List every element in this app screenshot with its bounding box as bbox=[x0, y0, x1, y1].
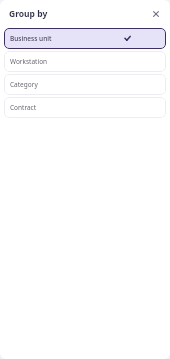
button[interactable]: Business unit bbox=[4, 28, 166, 49]
staticText: Business unit bbox=[10, 34, 52, 43]
button[interactable]: Workstation bbox=[4, 51, 166, 72]
staticText: Workstation bbox=[10, 57, 48, 66]
button[interactable]: Category bbox=[4, 74, 166, 95]
staticText: Group by bbox=[9, 8, 48, 20]
staticText: Contract bbox=[10, 103, 37, 112]
button[interactable]: Contract bbox=[4, 97, 166, 118]
button[interactable]: Close bbox=[149, 7, 163, 21]
staticText: Category bbox=[10, 80, 38, 89]
